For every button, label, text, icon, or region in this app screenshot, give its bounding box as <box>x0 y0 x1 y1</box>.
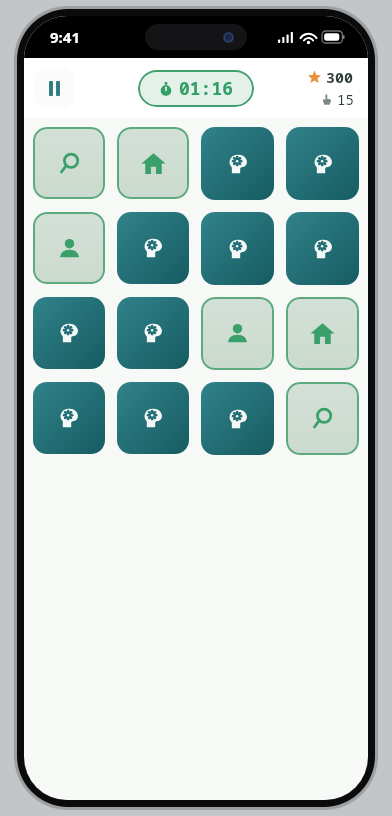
button[interactable]: Hidden card <box>33 297 105 369</box>
staticText: 9:41 <box>50 27 80 47</box>
button[interactable]: Hidden card <box>117 212 189 284</box>
staticText: 01:16 <box>179 76 233 101</box>
button[interactable]: Home card <box>286 297 359 370</box>
button[interactable]: Pause <box>34 68 74 108</box>
button[interactable]: 300 <box>308 67 354 109</box>
button[interactable]: Person card <box>33 212 105 284</box>
button[interactable]: Hidden card <box>117 297 189 369</box>
button[interactable]: Search card <box>286 382 359 455</box>
button[interactable]: Search card <box>33 127 105 199</box>
button[interactable]: Hidden card <box>117 382 189 454</box>
button[interactable]: Hidden card <box>286 212 359 285</box>
button[interactable]: Hidden card <box>286 127 359 200</box>
staticText: 15 <box>337 90 354 109</box>
button[interactable]: Hidden card <box>201 212 274 285</box>
button[interactable]: Home card <box>117 127 189 199</box>
button[interactable]: 01:16 <box>138 70 254 107</box>
button[interactable]: Hidden card <box>201 382 274 455</box>
button[interactable]: Hidden card <box>201 127 274 200</box>
staticText: 300 <box>326 67 354 87</box>
button[interactable]: Hidden card <box>33 382 105 454</box>
button[interactable]: Person card <box>201 297 274 370</box>
